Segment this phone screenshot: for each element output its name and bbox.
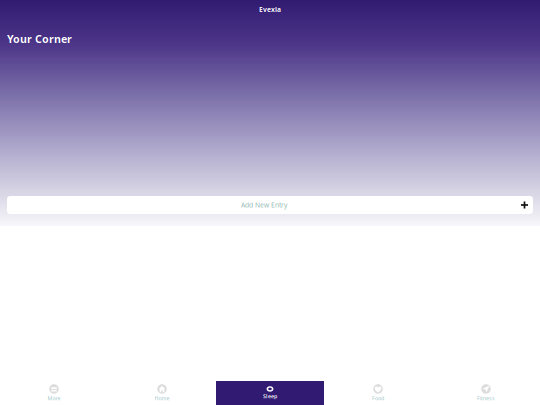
staticText: Sleep xyxy=(263,393,277,400)
button[interactable]: Add New Entry xyxy=(7,196,533,214)
staticText: Fitness xyxy=(477,395,495,402)
button[interactable]: Fitness xyxy=(432,381,540,405)
button[interactable]: Food xyxy=(324,381,432,405)
staticText: Food xyxy=(372,395,384,402)
staticText: Home xyxy=(154,395,169,402)
button[interactable]: Home xyxy=(108,381,216,405)
staticText: Evexia xyxy=(259,5,281,14)
button[interactable]: Sleep xyxy=(216,381,324,405)
staticText: Your Corner xyxy=(7,32,72,46)
staticText: Add New Entry xyxy=(241,201,287,209)
staticText: More xyxy=(47,395,60,402)
button[interactable]: More xyxy=(0,381,108,405)
